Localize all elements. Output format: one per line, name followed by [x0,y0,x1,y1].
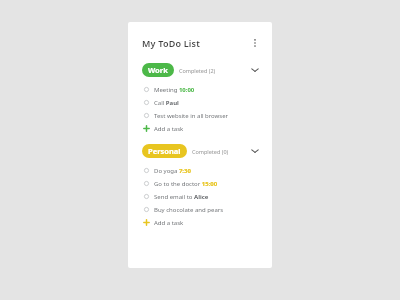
button[interactable]: Collapse Work [248,63,262,77]
staticText: Buy chocolate and pears [154,206,224,214]
button[interactable]: Send email to Alice [128,190,272,203]
staticText: Personal [148,146,181,156]
button[interactable]: Collapse Personal [248,144,262,158]
button[interactable]: Do yoga 7:30 [128,164,272,177]
button[interactable]: Meeting 10:00 [128,83,272,96]
staticText: Completed (2) [179,67,216,74]
staticText: Completed (0) [192,148,229,155]
staticText: Add a task [154,219,184,227]
button[interactable]: Test website in all browser [128,109,272,122]
staticText: Go to the doctor 15:00 [154,180,218,188]
staticText: Add a task [154,125,184,133]
staticText: Work [148,65,168,75]
staticText: Call Paul [154,99,179,107]
button[interactable]: Add a task [128,216,272,229]
staticText: Meeting 10:00 [154,86,195,94]
staticText: My ToDo List [142,37,201,49]
button[interactable]: More options [246,34,264,52]
button[interactable]: Work [128,63,272,77]
button[interactable]: Personal [128,144,272,158]
button[interactable]: Go to the doctor 15:00 [128,177,272,190]
button[interactable]: Call Paul [128,96,272,109]
staticText: Do yoga 7:30 [154,167,191,175]
staticText: Test website in all browser [154,112,229,120]
button[interactable]: Buy chocolate and pears [128,203,272,216]
staticText: Send email to Alice [154,193,209,201]
button[interactable]: Add a task [128,122,272,135]
